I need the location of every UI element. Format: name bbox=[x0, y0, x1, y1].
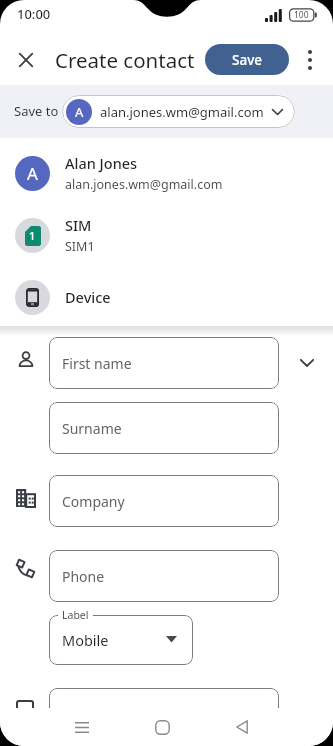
staticText: Save bbox=[232, 51, 263, 69]
staticText: Save to bbox=[14, 102, 59, 120]
button[interactable] bbox=[296, 44, 324, 75]
button[interactable]: Save bbox=[205, 44, 289, 75]
staticText: 1 bbox=[29, 228, 36, 243]
button[interactable] bbox=[288, 341, 326, 385]
staticText: A bbox=[27, 162, 38, 185]
button[interactable] bbox=[49, 615, 193, 665]
button[interactable] bbox=[140, 708, 184, 746]
button[interactable]: Phone bbox=[49, 550, 279, 602]
staticText: 100 bbox=[294, 9, 309, 21]
button[interactable]: Company bbox=[49, 475, 279, 527]
staticText: A bbox=[75, 103, 84, 121]
staticText: SIM1 bbox=[65, 238, 95, 255]
staticText: 10:00 bbox=[17, 5, 51, 23]
button[interactable] bbox=[60, 708, 104, 746]
staticText: alan.jones.wm@gmail.com bbox=[65, 176, 223, 193]
button[interactable]: First name bbox=[49, 337, 279, 389]
button[interactable] bbox=[220, 708, 264, 746]
staticText: Label bbox=[62, 608, 89, 622]
button[interactable] bbox=[49, 688, 279, 740]
staticText: Create contact bbox=[55, 46, 195, 74]
button[interactable]: A bbox=[62, 95, 295, 128]
staticText: First name bbox=[62, 354, 132, 373]
button[interactable]: Surname bbox=[49, 402, 279, 454]
staticText: alan.jones.wm@gmail.com bbox=[100, 103, 264, 121]
button[interactable]: Device bbox=[0, 266, 333, 328]
button[interactable] bbox=[8, 42, 44, 78]
staticText: Phone bbox=[62, 567, 105, 586]
button[interactable]: A bbox=[0, 142, 333, 204]
staticText: Alan Jones bbox=[65, 153, 138, 173]
staticText: Surname bbox=[62, 419, 122, 438]
staticText: SIM bbox=[65, 215, 92, 235]
button[interactable]: 1 bbox=[0, 204, 333, 266]
staticText: Company bbox=[62, 492, 125, 511]
staticText: Device bbox=[65, 287, 111, 307]
staticText: Mobile bbox=[62, 630, 109, 650]
